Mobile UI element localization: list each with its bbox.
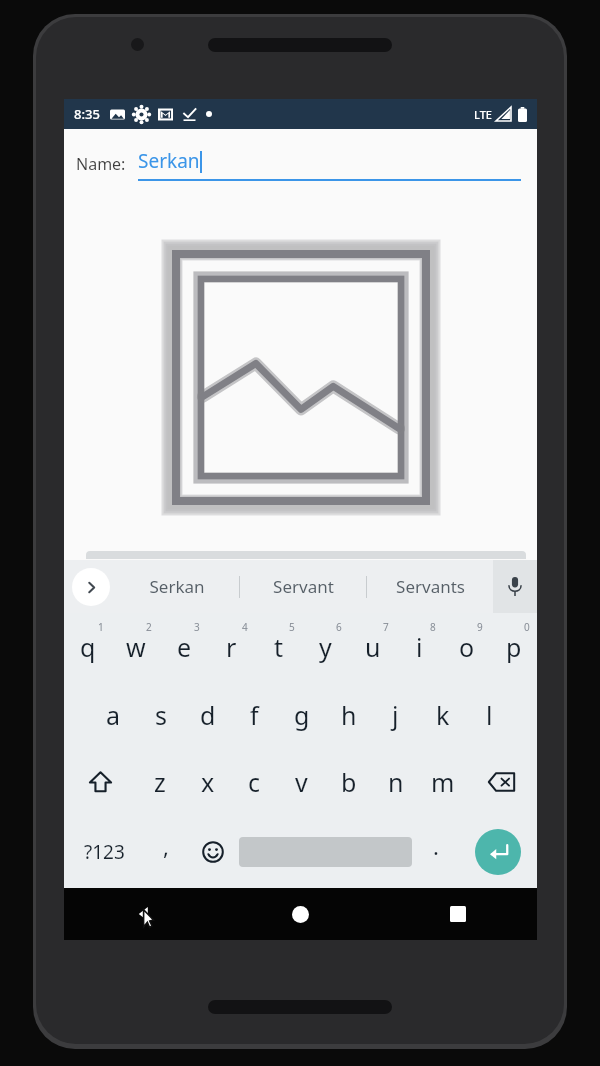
staticText: 5 [289,620,295,634]
button[interactable]: h [325,681,372,748]
staticText: d [200,698,216,732]
button[interactable]: , [144,815,188,888]
staticText: LTE [474,107,492,122]
button[interactable]: d [184,681,231,748]
button[interactable]: p [490,613,537,681]
staticText: i [416,630,423,664]
button[interactable]: More suggestions [72,568,110,606]
button[interactable]: j [372,681,419,748]
button[interactable]: Back [64,888,221,940]
staticText: ?123 [84,839,125,865]
button[interactable]: i [396,613,443,681]
button[interactable]: . [414,815,458,888]
staticText: f [250,698,259,732]
staticText: s [155,698,167,732]
button[interactable]: k [419,681,466,748]
button[interactable]: s [137,681,184,748]
button[interactable]: ?123 [64,815,144,888]
staticText: Servant [273,575,334,598]
staticText: e [177,630,192,664]
button[interactable]: Servants [367,560,493,613]
button[interactable]: q [64,613,112,681]
button[interactable]: u [349,613,396,681]
staticText: b [341,765,357,799]
staticText: p [506,630,522,664]
staticText: , [163,831,169,861]
staticText: w [126,630,146,664]
staticText: Servants [396,575,465,598]
staticText: c [248,765,261,799]
staticText: k [436,698,450,732]
button[interactable]: l [466,681,513,748]
button[interactable]: o [443,613,490,681]
staticText: Serkan [138,148,200,174]
button[interactable]: a [89,681,137,748]
staticText: q [80,630,96,664]
staticText: y [319,630,332,664]
button[interactable]: v [278,748,325,815]
button[interactable]: x [184,748,231,815]
button[interactable]: Enter [458,815,537,888]
staticText: 6 [336,620,342,634]
button[interactable]: Backspace [466,748,537,815]
button[interactable]: m [419,748,466,815]
button[interactable]: y [302,613,349,681]
button[interactable]: b [325,748,372,815]
staticText: Serkan [149,575,205,598]
button[interactable]: Space [237,815,414,888]
button[interactable]: g [278,681,325,748]
button[interactable]: z [136,748,184,815]
staticText: t [274,630,284,664]
staticText: l [486,698,493,732]
staticText: 9 [477,620,483,634]
staticText: x [201,765,215,799]
staticText: z [154,765,166,799]
staticText: o [459,630,475,664]
button[interactable]: Serkan [114,560,239,613]
button[interactable]: e [160,613,208,681]
staticText: 8:35 [74,105,100,123]
staticText: . [433,831,439,861]
button[interactable]: n [372,748,419,815]
button[interactable]: Voice input [493,560,537,613]
button[interactable]: w [112,613,160,681]
staticText: m [431,765,455,799]
staticText: 0 [524,620,530,634]
button[interactable]: Serkan [138,148,521,181]
staticText: n [388,765,404,799]
button[interactable]: Shift [64,748,136,815]
staticText: Name: [76,153,126,175]
staticText: h [341,698,357,732]
staticText: 7 [383,620,389,634]
button[interactable]: Servant [240,560,366,613]
staticText: 4 [242,620,248,634]
button[interactable]: f [231,681,278,748]
staticText: j [392,698,399,732]
staticText: 2 [146,620,152,634]
staticText: u [365,630,381,664]
staticText: 3 [194,620,200,634]
staticText: r [226,630,237,664]
button[interactable]: Home [221,888,379,940]
staticText: g [294,698,310,732]
button[interactable]: t [255,613,302,681]
staticText: 8 [430,620,436,634]
staticText: a [106,698,121,732]
staticText: 1 [98,620,104,634]
button[interactable]: Recent apps [379,888,537,940]
staticText: v [295,765,308,799]
button[interactable]: r [208,613,255,681]
button[interactable]: c [231,748,278,815]
button[interactable]: Emoji [188,815,237,888]
